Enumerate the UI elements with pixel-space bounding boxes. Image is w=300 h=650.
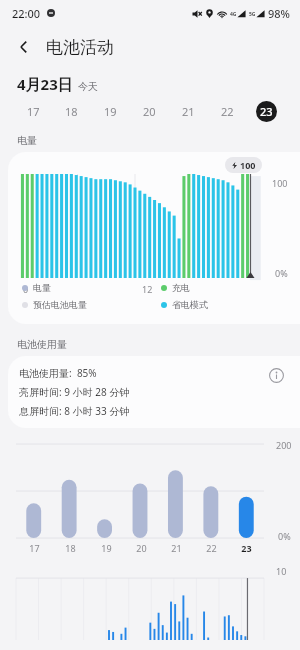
staticText: 0 [23, 283, 29, 295]
staticText: 4G [230, 11, 237, 18]
button[interactable]: 22 [208, 94, 247, 128]
staticText: 20 [143, 104, 156, 119]
staticText: 23 [260, 104, 273, 119]
button[interactable]: 18 [52, 94, 91, 128]
staticText: 省电模式 [172, 299, 208, 310]
staticText: 0% [275, 267, 288, 279]
staticText: 电池使用量 [17, 338, 67, 351]
staticText: 电量 [17, 134, 37, 147]
staticText: 18 [65, 104, 78, 119]
staticText: 21 [182, 104, 195, 119]
staticText: 17 [27, 104, 40, 119]
staticText: 21 [171, 542, 182, 554]
button[interactable]: 19 [91, 94, 130, 128]
button[interactable]: 17 [16, 542, 52, 554]
staticText: 200 [276, 439, 292, 451]
button[interactable]: 23 [247, 94, 286, 128]
button[interactable]: 21 [159, 542, 194, 554]
staticText: 18 [65, 542, 76, 554]
staticText: 充电 [172, 282, 190, 293]
staticText: 4月23日 [17, 74, 73, 94]
staticText: 亮屏时间: 9 小时 28 分钟 [19, 385, 130, 399]
button[interactable]: 20 [130, 94, 169, 128]
staticText: 23 [241, 542, 252, 554]
staticText: 电池活动 [46, 37, 114, 58]
staticText: 预估电池电量 [33, 299, 87, 310]
staticText: 19 [101, 542, 112, 554]
staticText: 息屏时间: 8 小时 33 分钟 [19, 404, 130, 418]
staticText: 22:00 [12, 6, 41, 21]
button[interactable]: 21 [169, 94, 208, 128]
staticText: 电池使用量: 85% [19, 366, 97, 380]
button[interactable]: 22 [194, 542, 229, 554]
staticText: 19 [104, 104, 117, 119]
staticText: 98% [268, 6, 290, 21]
button[interactable]: 23 [229, 542, 264, 554]
staticText: 17 [29, 542, 40, 554]
staticText: 今天 [78, 80, 98, 93]
staticText: 12 [142, 283, 153, 295]
button[interactable]: 电池使用量: 85% [8, 356, 300, 428]
staticText: 5G [249, 11, 256, 18]
staticText: 100 [240, 159, 256, 171]
button[interactable]: 20 [124, 542, 159, 554]
staticText: 0% [278, 530, 291, 542]
staticText: 20 [136, 542, 147, 554]
button[interactable]: 17 [14, 94, 52, 128]
button[interactable]: 18 [52, 542, 88, 554]
staticText: 100 [272, 177, 288, 189]
button[interactable]: 返回 [10, 33, 38, 61]
staticText: 22 [206, 542, 217, 554]
button[interactable]: 100 [8, 152, 300, 324]
button[interactable]: 详情 [266, 365, 286, 385]
staticText: 10 [276, 565, 287, 577]
staticText: 电量 [33, 282, 51, 293]
button[interactable]: 19 [88, 542, 124, 554]
staticText: 22 [221, 104, 234, 119]
